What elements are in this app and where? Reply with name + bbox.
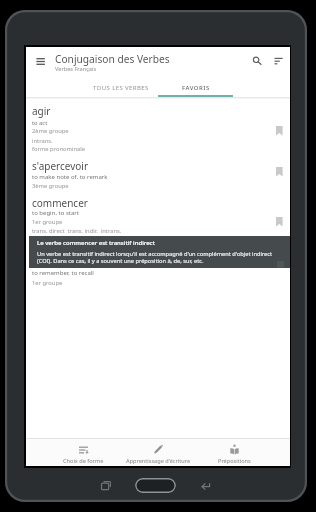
- button[interactable]: commencer: [26, 192, 290, 236]
- button[interactable]: Prépositions: [197, 439, 272, 466]
- button[interactable]: TOUS LES VERBES: [83, 78, 158, 97]
- staticText: trans. direct trans. indir. intrans.: [32, 227, 122, 235]
- button[interactable]: Choix de forme: [46, 439, 121, 466]
- staticText: 2ème groupe: [32, 127, 69, 135]
- button[interactable]: [271, 53, 287, 67]
- staticText: forme pronominale: [32, 145, 86, 153]
- button[interactable]: [135, 478, 176, 493]
- button[interactable]: agir: [26, 100, 290, 155]
- button[interactable]: s'apercevoir: [26, 155, 290, 192]
- staticText: Prépositions: [218, 457, 251, 465]
- staticText: to act: [32, 119, 48, 127]
- staticText: to remember, to recall: [32, 269, 94, 277]
- staticText: commencer: [32, 196, 88, 210]
- staticText: s'apercevoir: [32, 159, 89, 173]
- staticText: FAVORIS: [182, 84, 210, 92]
- button[interactable]: [273, 124, 286, 138]
- staticText: Choix de forme: [63, 457, 104, 465]
- staticText: Verbes Français: [55, 65, 97, 73]
- staticText: 1er groupe: [32, 218, 63, 226]
- button[interactable]: [33, 55, 48, 68]
- button[interactable]: FAVORIS: [158, 78, 233, 97]
- button[interactable]: [249, 53, 264, 67]
- button[interactable]: to remember, to recall: [26, 267, 290, 289]
- staticText: TOUS LES VERBES: [93, 84, 149, 92]
- staticText: 3ème groupe: [32, 182, 69, 190]
- button[interactable]: [98, 479, 114, 492]
- staticText: Conjugaison des Verbes: [55, 52, 170, 66]
- staticText: to begin, to start: [32, 209, 79, 217]
- staticText: agir: [32, 104, 51, 118]
- button[interactable]: [273, 215, 286, 229]
- button[interactable]: [273, 165, 286, 179]
- staticText: Apprentissage d'écriture: [126, 457, 191, 465]
- staticText: Un verbe est transitif indirect lorsqu'i…: [37, 250, 273, 258]
- staticText: intrans.: [32, 137, 53, 145]
- staticText: 1er groupe: [32, 279, 63, 287]
- button[interactable]: Apprentissage d'écriture: [96, 439, 221, 466]
- button[interactable]: [198, 479, 214, 492]
- staticText: (COI). Dans ce cas, il y a souvent une p…: [37, 257, 204, 265]
- staticText: to make note of, to remark: [32, 173, 108, 181]
- staticText: Le verbe commencer est transitif indirec…: [37, 239, 155, 247]
